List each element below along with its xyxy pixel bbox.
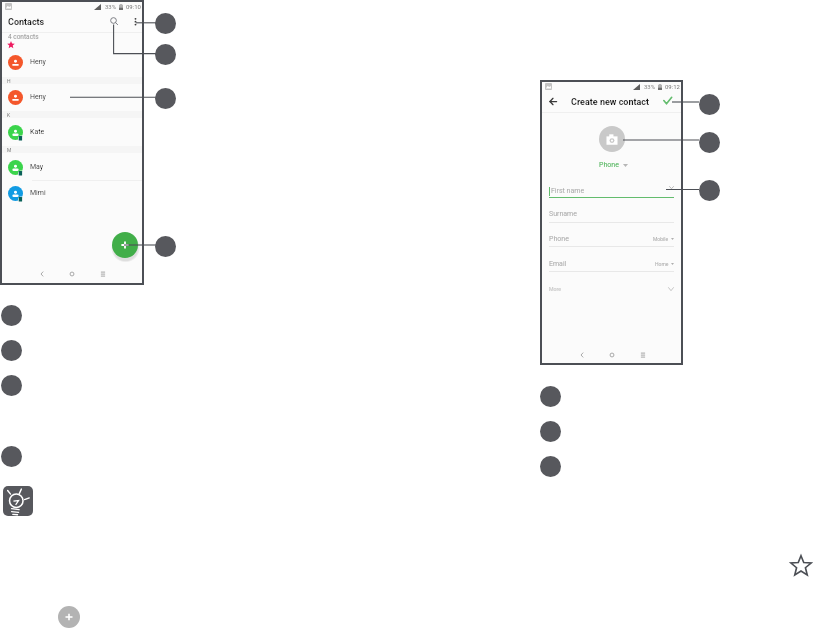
button[interactable]: Step marker [540, 386, 561, 407]
button[interactable]: Step marker [155, 88, 176, 109]
button[interactable]: Step marker [699, 94, 720, 115]
button[interactable]: Search [107, 13, 122, 28]
button[interactable]: Add contact [112, 232, 138, 258]
button[interactable]: Favourite [789, 554, 813, 578]
staticText: 33% [105, 3, 117, 10]
button[interactable]: Step marker [155, 13, 176, 34]
staticText: Home [655, 261, 669, 267]
staticText: 09:10 [126, 3, 141, 10]
button[interactable]: Mimi [1, 181, 143, 206]
staticText: First name [551, 187, 585, 195]
button[interactable]: Step marker [155, 236, 176, 257]
button[interactable]: Step marker [1, 340, 22, 361]
staticText: Contacts [8, 17, 45, 28]
button[interactable]: Home [605, 348, 619, 362]
button[interactable]: Heny [1, 85, 143, 110]
staticText: H [7, 78, 11, 84]
button[interactable]: Heny [1, 50, 143, 75]
button[interactable]: Phone [599, 161, 628, 169]
staticText: May [30, 163, 44, 171]
staticText: 33% [644, 83, 656, 90]
button[interactable]: Back [547, 96, 560, 109]
button[interactable]: Back [35, 267, 49, 281]
staticText: 4 contacts [8, 33, 39, 41]
button[interactable]: Recents [96, 267, 110, 281]
button[interactable]: Home [65, 267, 79, 281]
staticText: 09:12 [665, 83, 680, 90]
button[interactable]: Recents [636, 348, 650, 362]
button[interactable]: May [1, 155, 143, 180]
button[interactable]: Kate [1, 120, 143, 145]
button[interactable]: Step marker [699, 180, 720, 201]
button[interactable]: Email [549, 260, 674, 268]
staticText: Mobile [653, 236, 669, 242]
staticText: Phone [549, 235, 569, 243]
button[interactable]: Step marker [155, 44, 176, 65]
button[interactable]: Save [661, 95, 674, 108]
button[interactable]: Add photo [599, 126, 625, 152]
button[interactable]: More [549, 284, 674, 294]
button[interactable]: More options [129, 13, 142, 26]
button[interactable]: Step marker [1, 446, 22, 467]
button[interactable]: Back [575, 348, 589, 362]
staticText: Kate [30, 128, 45, 136]
button[interactable]: Step marker [1, 375, 22, 396]
staticText: Email [549, 260, 567, 268]
button[interactable]: Step marker [540, 456, 561, 477]
staticText: M [7, 147, 12, 153]
staticText: Heny [30, 58, 46, 66]
staticText: Phone [599, 161, 619, 169]
staticText: K [7, 112, 11, 118]
staticText: Mimi [30, 189, 46, 197]
button[interactable]: Add [58, 606, 80, 628]
staticText: Heny [30, 93, 46, 101]
staticText: Create new contact [571, 97, 650, 108]
staticText: Surname [549, 210, 577, 218]
button[interactable]: Surname [549, 210, 674, 218]
staticText: More [549, 286, 561, 292]
button[interactable]: Step marker [1, 305, 22, 326]
button[interactable]: Step marker [540, 421, 561, 442]
button[interactable]: Step marker [699, 132, 720, 153]
button[interactable]: Tip [3, 486, 33, 516]
button[interactable]: Phone [549, 235, 674, 243]
button[interactable]: First name [549, 186, 674, 195]
